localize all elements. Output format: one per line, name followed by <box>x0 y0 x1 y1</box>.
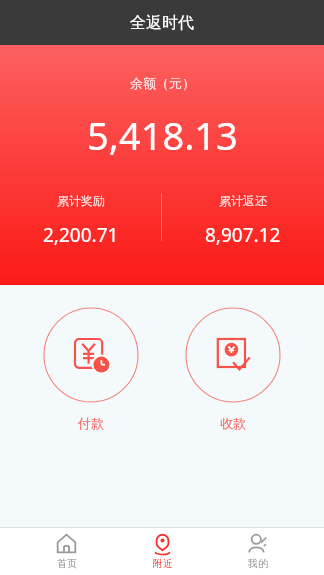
staticText: 首页 <box>57 557 77 570</box>
staticText: 累计奖励 <box>57 193 105 208</box>
button[interactable]: 收款 <box>181 303 285 435</box>
staticText: 收款 <box>220 415 246 431</box>
staticText: 2,200.71 <box>43 222 119 248</box>
other: 我的 <box>247 533 268 554</box>
button[interactable]: 首页 <box>38 529 95 574</box>
other: 附近 <box>152 533 173 554</box>
staticText: 5,418.13 <box>87 109 238 161</box>
staticText: 付款 <box>78 415 104 431</box>
button[interactable]: 附近 <box>134 529 191 574</box>
button[interactable]: 我的 <box>229 529 286 574</box>
staticText: 全返时代 <box>130 13 194 33</box>
other: 首页 <box>56 533 77 554</box>
staticText: 8,907.12 <box>205 222 281 248</box>
staticText: 附近 <box>153 557 173 570</box>
staticText: 累计返还 <box>219 193 267 208</box>
staticText: 余额（元） <box>130 75 195 91</box>
button[interactable]: 付款 <box>39 303 143 435</box>
staticText: 我的 <box>248 557 268 570</box>
